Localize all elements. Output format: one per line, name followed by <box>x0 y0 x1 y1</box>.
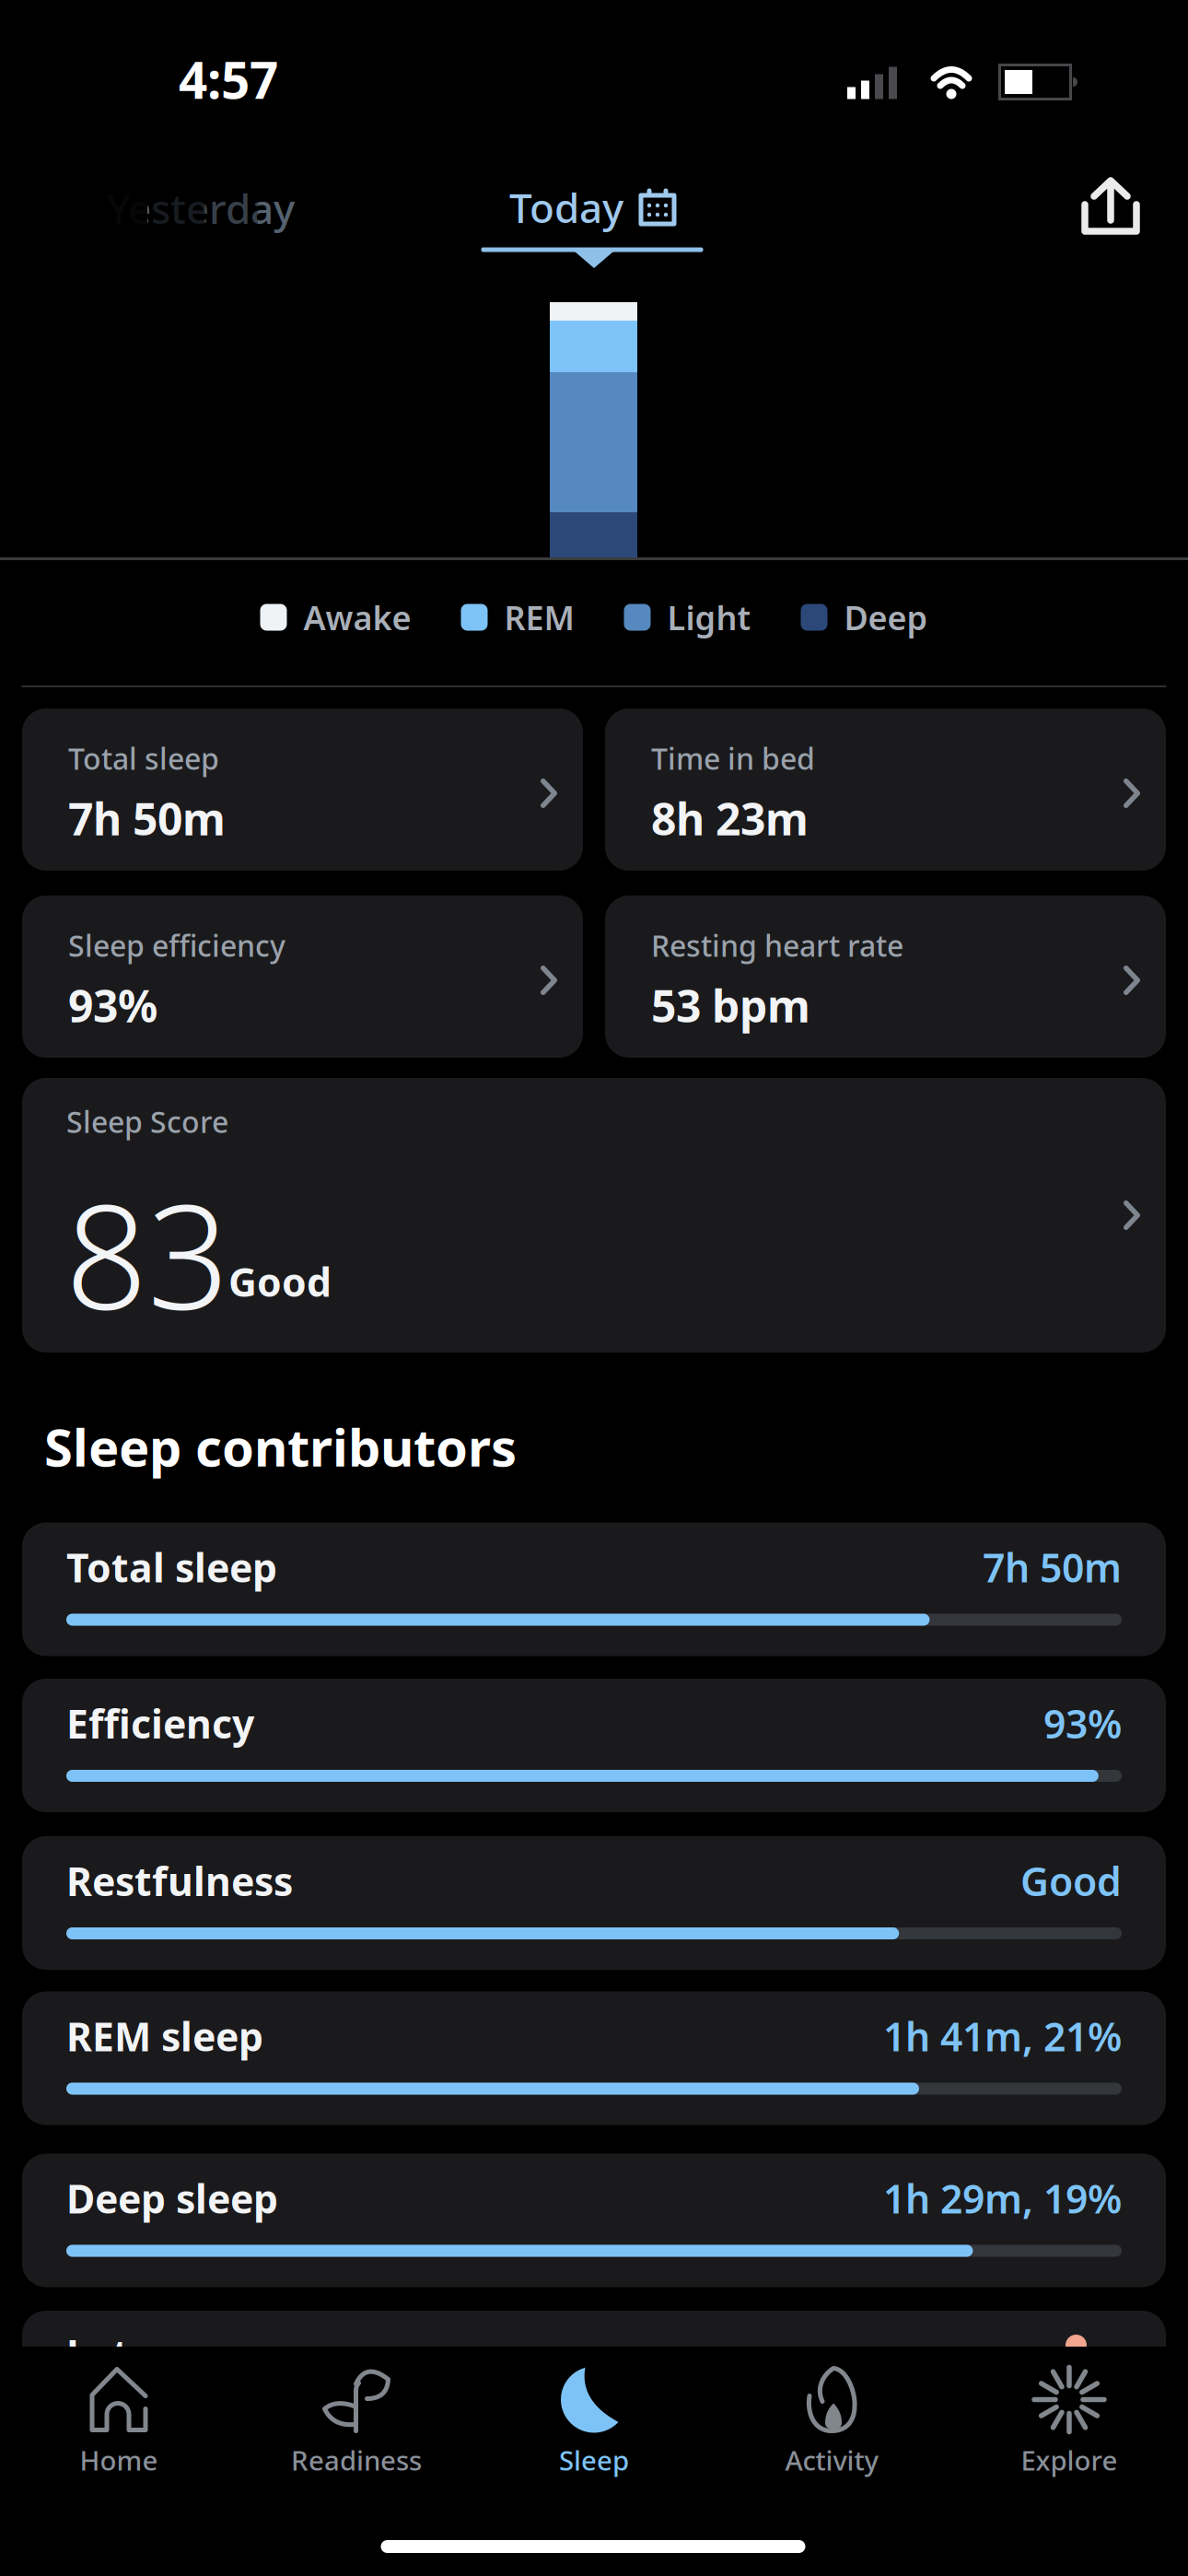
button[interactable]: Readiness <box>238 2361 475 2481</box>
staticText: Explore <box>1021 2442 1118 2478</box>
staticText: 1h 29m, 19% <box>883 2172 1122 2224</box>
staticText: 7h 50m <box>983 1541 1122 1593</box>
staticText: Good <box>228 1255 332 1308</box>
staticText: Sleep contributors <box>44 1412 517 1481</box>
staticText: Today <box>509 180 623 234</box>
staticText: 7h 50m <box>68 789 226 848</box>
button[interactable]: Resting heart rate <box>605 896 1166 1058</box>
button[interactable]: Time in bed <box>605 708 1166 871</box>
staticText: 4:57 <box>179 46 278 113</box>
button[interactable]: Latency <box>22 2311 1166 2444</box>
button[interactable]: Yesterday <box>81 176 320 240</box>
button[interactable]: Sleep Score <box>22 1078 1166 1352</box>
staticText: Light <box>667 595 751 639</box>
staticText: Deep <box>844 595 928 639</box>
staticText: 8h 23m <box>651 789 809 848</box>
button[interactable]: Sleep <box>475 2361 713 2481</box>
button[interactable]: Explore <box>950 2361 1188 2481</box>
staticText: Total sleep <box>66 1541 277 1593</box>
staticText: Yesterday <box>107 181 295 235</box>
staticText: Sleep efficiency <box>68 926 285 965</box>
staticText: Sleep Score <box>66 1102 228 1141</box>
button[interactable]: Home <box>0 2361 238 2481</box>
button[interactable]: Share <box>1074 170 1147 243</box>
staticText: Latency <box>66 2327 221 2379</box>
button[interactable]: Sleep efficiency <box>22 896 583 1058</box>
staticText: Home <box>80 2442 158 2478</box>
button[interactable]: Activity <box>713 2361 950 2481</box>
staticText: Restfulness <box>66 1855 293 1907</box>
button[interactable]: Total sleep <box>22 708 583 871</box>
staticText: 93% <box>1043 1697 1122 1749</box>
staticText: REM sleep <box>66 2010 263 2062</box>
button[interactable]: Deep sleep <box>22 2154 1166 2287</box>
staticText: 83 <box>65 1158 229 1348</box>
staticText: Readiness <box>291 2442 422 2478</box>
button[interactable]: Today <box>483 175 704 240</box>
staticText: Total sleep <box>68 739 219 778</box>
staticText: Deep sleep <box>66 2172 278 2224</box>
staticText: Resting heart rate <box>651 926 903 965</box>
button[interactable]: Restfulness <box>22 1836 1166 1970</box>
button[interactable]: Total sleep <box>22 1522 1166 1656</box>
staticText: Sleep <box>559 2442 629 2478</box>
staticText: Good <box>1020 1855 1122 1907</box>
staticText: 53 bpm <box>651 976 810 1035</box>
staticText: Activity <box>785 2442 878 2478</box>
staticText: 93% <box>68 976 157 1035</box>
button[interactable]: REM sleep <box>22 1991 1166 2125</box>
staticText: 1h 41m, 21% <box>883 2010 1122 2062</box>
staticText: Time in bed <box>651 739 815 778</box>
staticText: REM <box>504 595 574 639</box>
staticText: Efficiency <box>66 1697 254 1749</box>
button[interactable]: Efficiency <box>22 1679 1166 1812</box>
staticText: Awake <box>303 595 411 639</box>
